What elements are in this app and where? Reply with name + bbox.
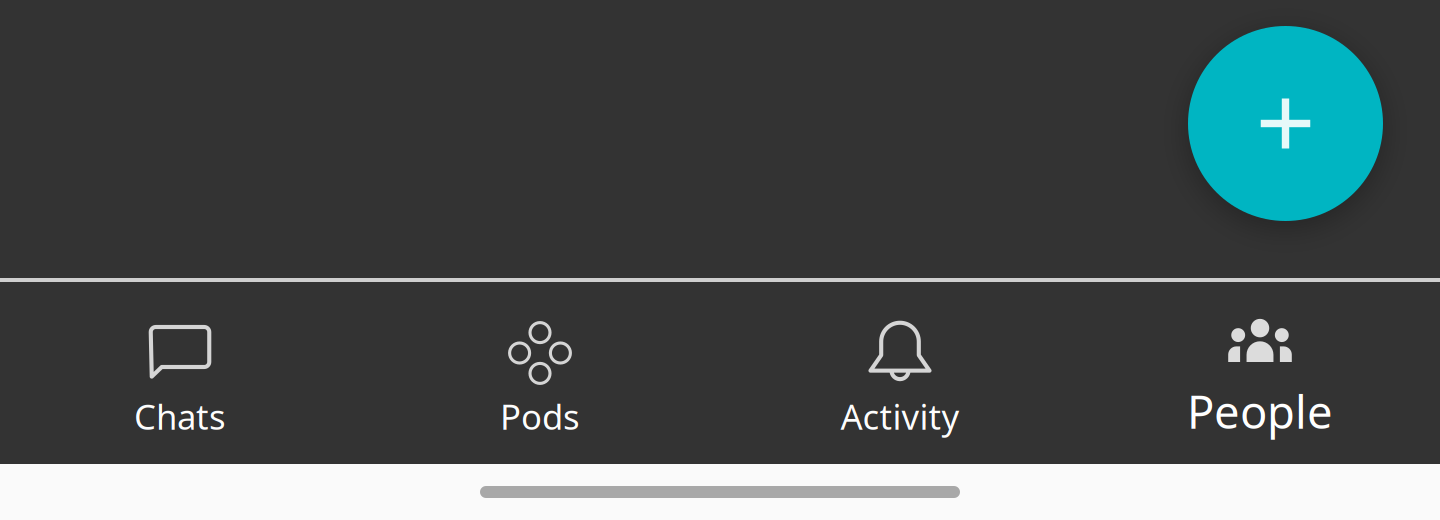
button[interactable]: New conversation (1188, 26, 1383, 221)
staticText: People (1187, 381, 1333, 441)
button[interactable]: Pods (360, 282, 720, 464)
staticText: Chats (134, 393, 226, 439)
staticText: Activity (840, 393, 959, 439)
button[interactable]: Chats (0, 282, 360, 464)
button[interactable]: People (1080, 282, 1440, 464)
staticText: Pods (500, 393, 580, 439)
button[interactable]: Activity (720, 282, 1080, 464)
